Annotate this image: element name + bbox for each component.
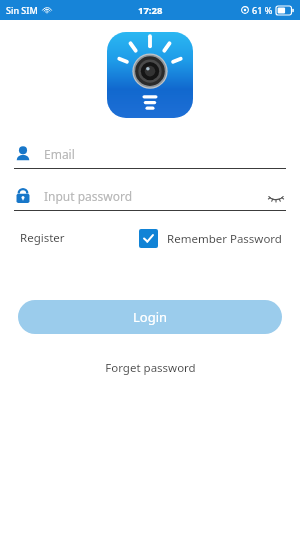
staticText: 61 % xyxy=(252,4,273,16)
staticText: Remember Password xyxy=(167,231,282,247)
staticText: Input password xyxy=(44,188,266,204)
staticText: Login xyxy=(133,308,168,326)
button[interactable]: Login xyxy=(18,300,282,334)
staticText: Sin SIM xyxy=(6,4,38,16)
staticText: Register xyxy=(20,230,65,246)
staticText: Email xyxy=(44,146,75,162)
staticText: 17:28 xyxy=(138,4,163,17)
button[interactable]: Forget password xyxy=(97,356,204,380)
button[interactable]: Register xyxy=(18,226,67,250)
button[interactable]: Remember Password xyxy=(139,226,282,251)
staticText: Forget password xyxy=(105,360,196,376)
button[interactable]: Show password xyxy=(266,186,286,206)
